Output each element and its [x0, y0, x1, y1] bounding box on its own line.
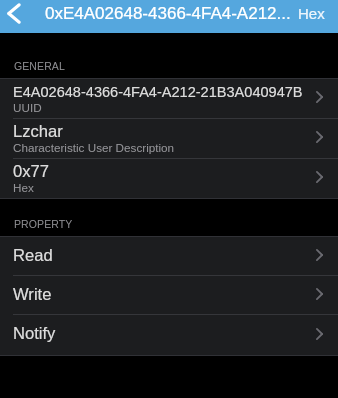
button[interactable]: Hex — [285, 0, 338, 33]
staticText: Hex — [298, 5, 325, 22]
button[interactable]: Write — [0, 276, 338, 314]
button[interactable]: Notify — [0, 315, 338, 355]
staticText: Notify — [13, 324, 304, 343]
staticText: Write — [13, 285, 304, 304]
button[interactable]: E4A02648-4366-4FA4-A212-21B3A040947B — [0, 79, 338, 118]
button[interactable]: 0x77 — [0, 159, 338, 198]
staticText: Hex — [13, 181, 304, 194]
staticText: 0xE4A02648-4366-4FA4-A212... — [45, 4, 298, 23]
button[interactable]: Read — [0, 237, 338, 275]
staticText: 0x77 — [13, 162, 304, 181]
staticText: UUID — [13, 101, 304, 114]
staticText: Lzchar — [13, 122, 304, 141]
staticText: E4A02648-4366-4FA4-A212-21B3A040947B — [13, 84, 304, 100]
staticText: Characteristic User Description — [13, 141, 304, 154]
button[interactable]: Lzchar — [0, 119, 338, 158]
staticText: Read — [13, 246, 304, 265]
staticText: PROPERTY — [14, 218, 73, 230]
button[interactable]: Back — [0, 0, 30, 33]
staticText: GENERAL — [14, 60, 65, 72]
